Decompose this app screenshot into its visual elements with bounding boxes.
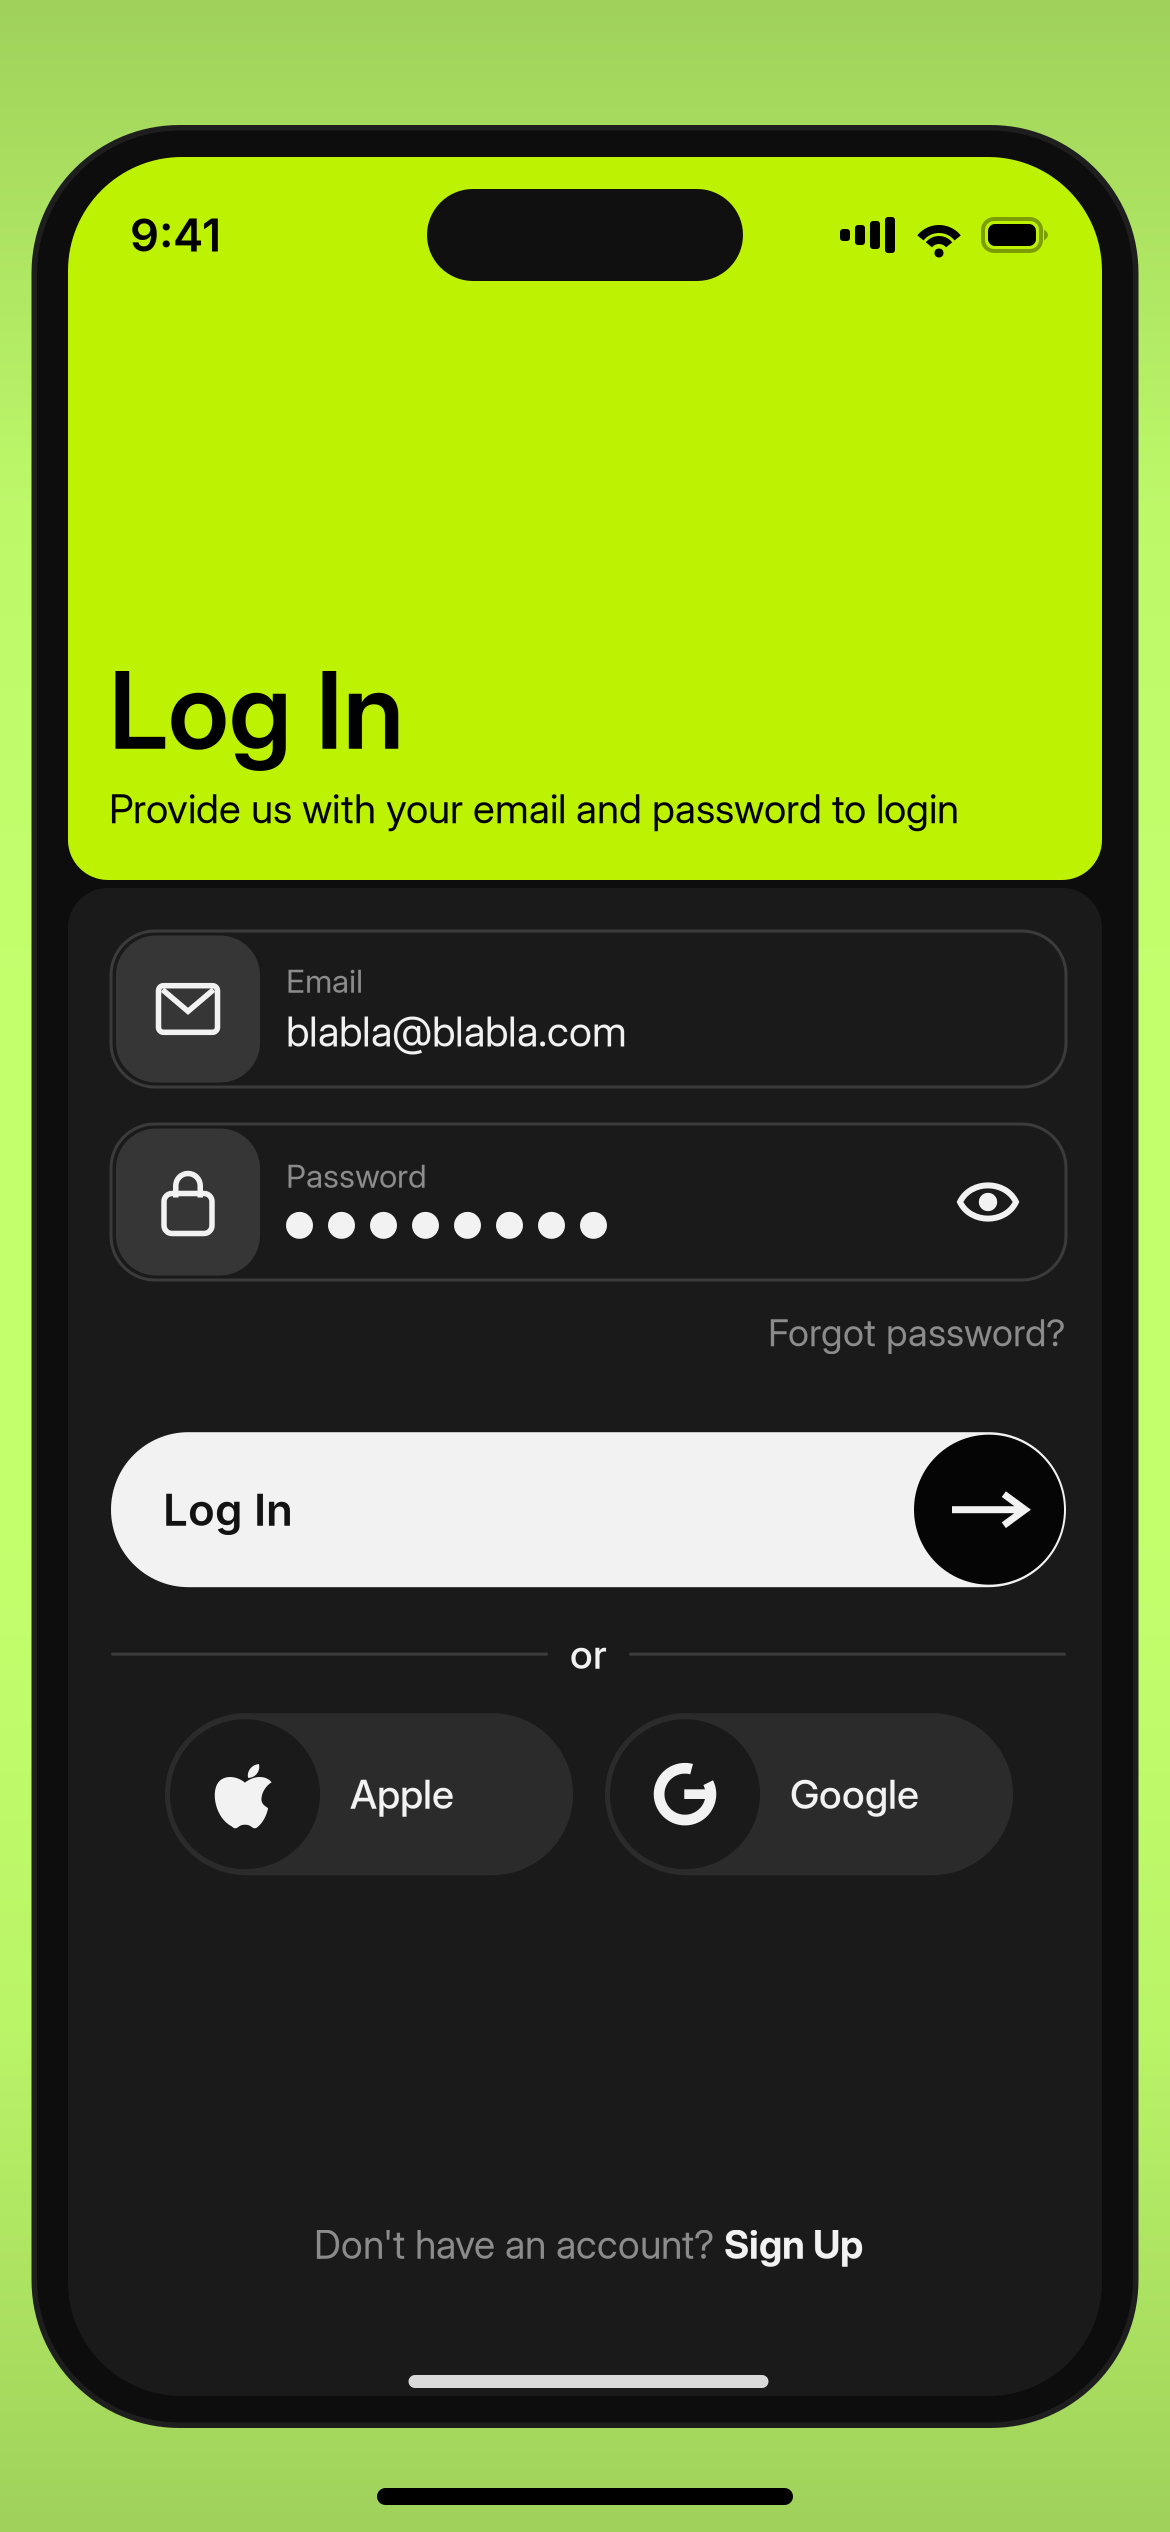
button[interactable]: Forgot password?: [768, 1304, 1066, 1361]
staticText: Sign Up: [724, 2221, 863, 2268]
button[interactable]: Don't have an account?: [314, 2213, 863, 2276]
staticText: Email: [286, 962, 363, 1000]
button[interactable]: Show password: [957, 1178, 1019, 1226]
staticText: Provide us with your email and password …: [109, 785, 959, 833]
button[interactable]: Google: [605, 1713, 1013, 1875]
staticText: or: [570, 1630, 607, 1678]
staticText: Apple: [350, 1770, 454, 1818]
staticText: 9:41: [130, 208, 221, 262]
staticText: Forgot password?: [768, 1310, 1065, 1355]
staticText: Log In: [109, 645, 404, 775]
staticText: Log In: [163, 1483, 293, 1536]
staticText: Don't have an account?: [314, 2221, 724, 2268]
staticText: Google: [790, 1770, 919, 1818]
staticText: Password: [286, 1157, 427, 1195]
button[interactable]: Apple: [165, 1713, 573, 1875]
staticText: blabla@blabla.com: [286, 1006, 627, 1056]
button[interactable]: Log In: [111, 1432, 1066, 1587]
